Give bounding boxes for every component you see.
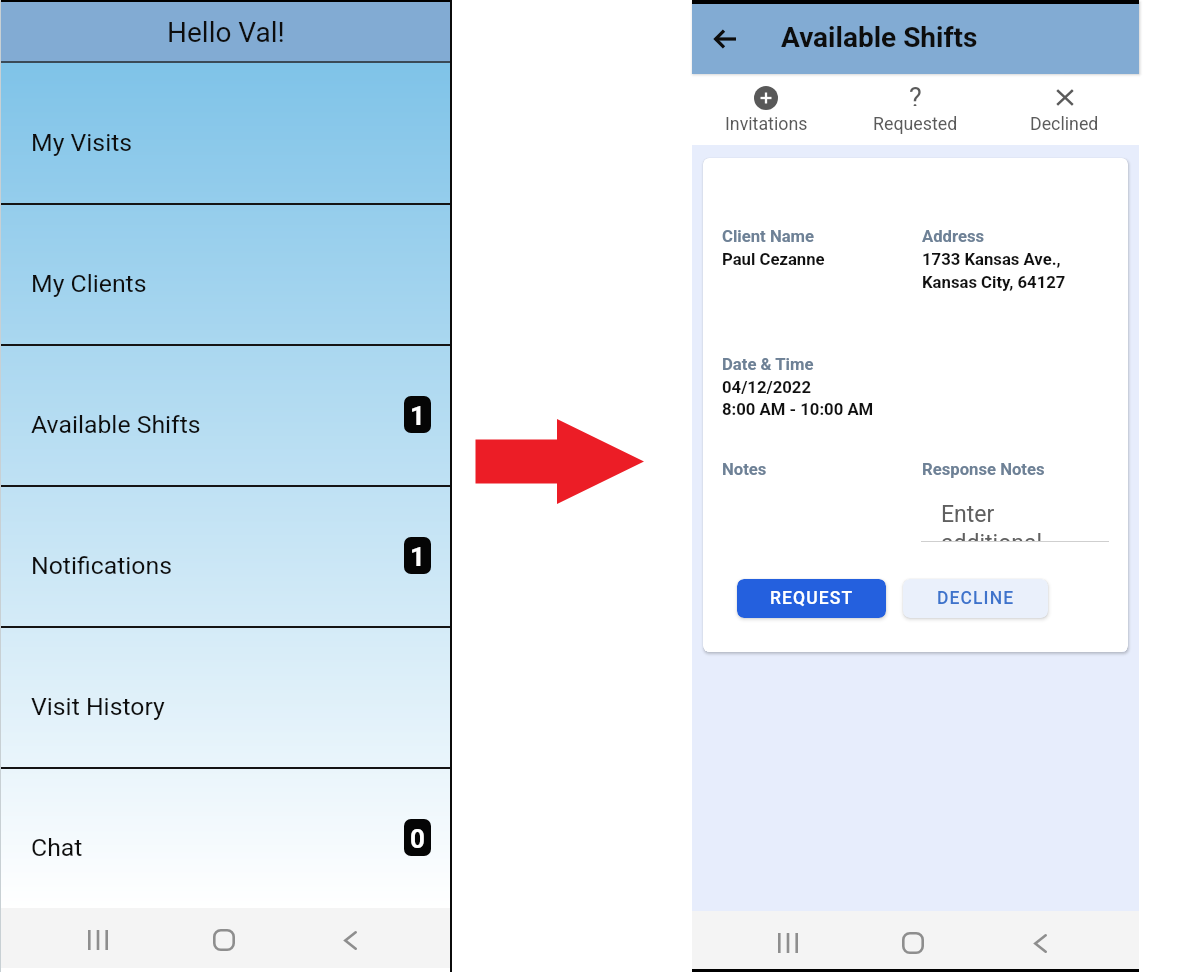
button[interactable]: Back — [696, 10, 754, 68]
staticText: ? — [909, 82, 922, 106]
button[interactable]: Recent apps — [760, 919, 816, 967]
staticText: Available Shifts — [781, 21, 978, 54]
button[interactable]: Back — [322, 916, 378, 964]
staticText: My Clients — [31, 269, 147, 298]
staticText: Invitations — [725, 113, 808, 134]
button[interactable]: Invitations — [692, 74, 841, 145]
staticText: My Visits — [31, 128, 133, 157]
staticText: Requested — [873, 113, 958, 134]
button[interactable]: DECLINE — [903, 579, 1048, 618]
staticText: Client Name — [722, 227, 815, 247]
staticText: 04/12/2022 — [722, 378, 811, 398]
button[interactable]: Chat — [0, 768, 452, 908]
staticText: Date & Time — [722, 355, 814, 375]
staticText: Address — [922, 227, 985, 247]
staticText: Notifications — [31, 551, 172, 580]
staticText: Hello Val! — [167, 16, 285, 49]
button[interactable]: Recent apps — [70, 916, 126, 964]
staticText: 1 — [410, 542, 425, 572]
staticText: Notes — [722, 460, 767, 480]
button[interactable]: REQUEST — [737, 579, 886, 618]
staticText: 1 — [410, 401, 425, 431]
button[interactable]: Declined — [990, 74, 1139, 145]
staticText: 0 — [410, 824, 425, 854]
button[interactable]: ? — [841, 74, 990, 145]
button[interactable]: Visit History — [0, 627, 452, 768]
staticText: REQUEST — [770, 588, 854, 609]
staticText: 8:00 AM - 10:00 AM — [722, 400, 874, 420]
staticText: Declined — [1030, 113, 1099, 134]
button[interactable]: Home — [196, 916, 252, 964]
staticText: Available Shifts — [31, 410, 201, 439]
button[interactable]: My Clients — [0, 204, 452, 345]
button[interactable]: My Visits — [0, 63, 452, 204]
staticText: Visit History — [31, 692, 165, 721]
staticText: Chat — [31, 833, 83, 862]
button[interactable]: Back — [1012, 919, 1068, 967]
staticText: DECLINE — [937, 588, 1015, 609]
button[interactable]: Notifications — [0, 486, 452, 627]
button[interactable]: Home — [885, 919, 941, 967]
staticText: Enter additional — [941, 501, 1051, 542]
staticText: Paul Cezanne — [722, 250, 825, 270]
staticText: 1733 Kansas Ave., — [922, 250, 1061, 270]
button[interactable]: Available Shifts — [0, 345, 452, 486]
staticText: Kansas City, 64127 — [922, 273, 1066, 293]
staticText: Response Notes — [922, 460, 1045, 480]
